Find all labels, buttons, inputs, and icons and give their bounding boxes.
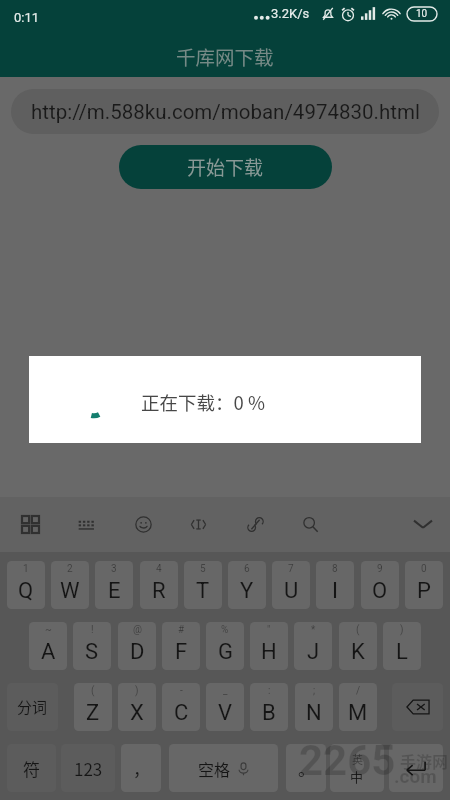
button[interactable]: " <box>250 622 288 670</box>
button[interactable]: 2 <box>51 561 89 609</box>
staticText: E <box>108 578 121 604</box>
staticText: 8 <box>332 563 338 575</box>
button[interactable]: ! <box>73 622 111 670</box>
button[interactable]: 空格 <box>169 744 278 792</box>
staticText: M <box>348 700 368 726</box>
staticText: 6 <box>244 563 250 575</box>
staticText: O <box>372 578 388 604</box>
button[interactable]: % <box>206 622 244 670</box>
staticText: 9 <box>377 563 383 575</box>
button[interactable]: Enter <box>389 744 443 792</box>
staticText: I <box>332 578 338 604</box>
staticText: 10 <box>416 8 428 20</box>
button[interactable]: 0 <box>405 561 443 609</box>
button[interactable]: Apps <box>13 507 47 541</box>
button[interactable]: ) <box>383 622 421 670</box>
button[interactable]: ) <box>118 683 156 731</box>
staticText: 空格 <box>198 757 231 780</box>
button[interactable]: ( <box>339 622 377 670</box>
staticText: ) <box>400 624 404 636</box>
button[interactable]: http://m.588ku.com/moban/4974830.html <box>11 89 439 134</box>
staticText: : <box>268 685 271 697</box>
staticText: U <box>284 578 299 604</box>
staticText: % <box>221 624 229 636</box>
button[interactable]: * <box>294 622 332 670</box>
staticText: # <box>178 624 185 636</box>
staticText: ( <box>356 624 360 636</box>
button[interactable]: Emoji <box>126 507 160 541</box>
staticText: 千库网下载 <box>176 42 274 70</box>
button[interactable]: _ <box>206 683 244 731</box>
staticText: 123 <box>74 756 103 781</box>
button[interactable]: 8 <box>316 561 354 609</box>
staticText: 分词 <box>17 696 48 718</box>
staticText: V <box>218 700 233 726</box>
button[interactable]: # <box>162 622 200 670</box>
staticText: ! <box>91 624 94 636</box>
staticText: @ <box>133 624 142 636</box>
button[interactable]: Attach <box>238 507 272 541</box>
button[interactable]: ( <box>74 683 112 731</box>
button[interactable]: 1 <box>7 561 45 609</box>
staticText: S <box>85 639 99 665</box>
button[interactable]: 9 <box>361 561 399 609</box>
staticText: ( <box>91 685 95 697</box>
staticText: 7 <box>288 563 294 575</box>
staticText: X <box>130 700 144 726</box>
staticText: http://m.588ku.com/moban/4974830.html <box>31 100 420 124</box>
button[interactable]: Keyboard layout <box>69 507 103 541</box>
staticText: ) <box>135 685 139 697</box>
button[interactable]: Hide keyboard <box>406 507 440 541</box>
staticText: 手游网 <box>400 749 449 772</box>
staticText: T <box>196 578 210 604</box>
button[interactable]: - <box>162 683 200 731</box>
staticText: " <box>267 624 271 636</box>
staticText: 正在下载：0 % <box>141 389 265 416</box>
staticText: R <box>152 578 166 604</box>
staticText: 0 <box>421 563 427 575</box>
staticText: 0:11 <box>14 10 40 25</box>
button[interactable]: Backspace <box>392 683 443 731</box>
staticText: G <box>218 639 233 665</box>
staticText: 3.2K/s <box>271 6 310 21</box>
staticText: F <box>175 639 188 665</box>
button[interactable]: Search <box>293 507 327 541</box>
button[interactable]: 4 <box>140 561 178 609</box>
button[interactable]: 英 <box>330 744 384 792</box>
button[interactable]: 分词 <box>7 683 58 731</box>
button[interactable]: ~ <box>29 622 67 670</box>
staticText: ， <box>133 756 150 781</box>
staticText: 1 <box>23 563 29 575</box>
staticText: Y <box>240 578 254 604</box>
button[interactable]: 3 <box>95 561 133 609</box>
staticText: ; <box>313 685 316 697</box>
staticText: - <box>180 685 183 697</box>
button[interactable]: 123 <box>61 744 115 792</box>
button[interactable]: 符 <box>7 744 56 792</box>
button[interactable]: 开始下载 <box>119 145 332 189</box>
staticText: .com <box>394 765 437 787</box>
staticText: A <box>41 639 56 665</box>
staticText: Q <box>18 578 34 604</box>
staticText: Z <box>86 700 100 726</box>
button[interactable]: ; <box>295 683 333 731</box>
staticText: 3 <box>111 563 117 575</box>
button[interactable]: 5 <box>184 561 222 609</box>
button[interactable]: @ <box>118 622 156 670</box>
staticText: 5 <box>200 563 206 575</box>
staticText: K <box>351 639 365 665</box>
staticText: B <box>262 700 276 726</box>
button[interactable]: 7 <box>272 561 310 609</box>
staticText: 。 <box>298 756 315 781</box>
staticText: _ <box>223 685 228 697</box>
staticText: 中 <box>350 767 364 786</box>
staticText: L <box>396 639 408 665</box>
button[interactable]: ， <box>121 744 161 792</box>
staticText: 2 <box>67 563 73 575</box>
button[interactable]: : <box>250 683 288 731</box>
button[interactable]: / <box>339 683 377 731</box>
button[interactable]: 。 <box>286 744 326 792</box>
button[interactable]: 6 <box>228 561 266 609</box>
button[interactable]: Text tools <box>181 507 215 541</box>
staticText: J <box>307 639 320 665</box>
